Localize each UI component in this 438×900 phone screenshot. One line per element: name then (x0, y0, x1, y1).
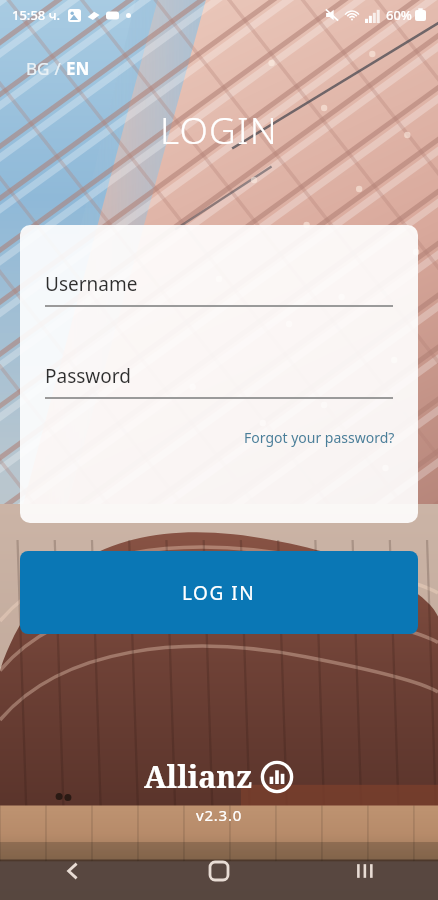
button[interactable]: Password (45, 363, 393, 399)
button[interactable]: Username (45, 271, 393, 307)
staticText: Allianz (144, 756, 253, 797)
staticText: / (50, 57, 66, 80)
staticText: BG (26, 57, 50, 80)
button[interactable]: Recent apps (292, 842, 438, 900)
button[interactable]: Forgot your password? (240, 423, 399, 452)
staticText: LOGIN (160, 104, 278, 154)
staticText: 60% (386, 6, 412, 24)
button[interactable]: LOG IN (20, 551, 418, 634)
staticText: Forgot your password? (244, 428, 395, 447)
staticText: v2.3.0 (196, 805, 243, 825)
staticText: LOG IN (182, 580, 256, 606)
staticText: EN (66, 57, 90, 80)
button[interactable]: Back (0, 842, 146, 900)
staticText: 15:58 ч. (12, 6, 61, 24)
button[interactable]: BG (22, 54, 94, 83)
staticText: Username (45, 271, 138, 297)
staticText: Password (45, 363, 131, 389)
button[interactable]: Home (146, 842, 292, 900)
